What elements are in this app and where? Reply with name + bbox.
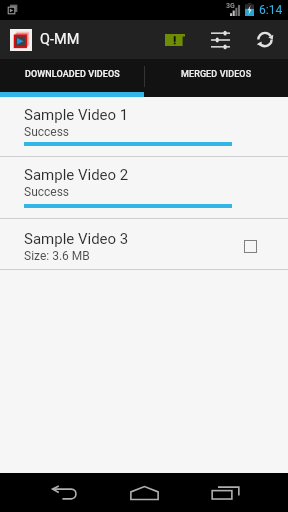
button[interactable]: Sample Video 2 <box>0 157 288 218</box>
button[interactable]: Settings <box>200 20 240 59</box>
button[interactable]: Q-MM <box>10 20 80 59</box>
button[interactable]: Sample Video 1 <box>0 97 288 156</box>
staticText: Sample Video 3 <box>24 230 129 248</box>
button[interactable]: MERGED VIDEOS <box>144 59 288 92</box>
staticText: Q-MM <box>40 31 80 48</box>
staticText: 6:14 <box>259 3 283 17</box>
button[interactable]: DOWNLOADED VIDEOS <box>0 59 144 92</box>
button[interactable]: Back <box>24 473 104 512</box>
staticText: Success <box>24 125 70 139</box>
staticText: Sample Video 2 <box>24 166 129 184</box>
button[interactable]: Refresh <box>245 20 285 59</box>
button[interactable]: Recent apps <box>185 473 266 512</box>
button[interactable]: Select video <box>244 240 257 253</box>
staticText: Success <box>24 185 70 199</box>
staticText: MERGED VIDEOS <box>181 69 252 80</box>
button[interactable]: Notices <box>155 20 195 59</box>
staticText: Sample Video 1 <box>24 106 129 124</box>
staticText: DOWNLOADED VIDEOS <box>25 69 120 80</box>
button[interactable]: Home <box>104 473 185 512</box>
staticText: 3G <box>226 2 235 10</box>
staticText: Size: 3.6 MB <box>24 249 90 263</box>
button[interactable]: Sample Video 3 <box>0 219 288 269</box>
